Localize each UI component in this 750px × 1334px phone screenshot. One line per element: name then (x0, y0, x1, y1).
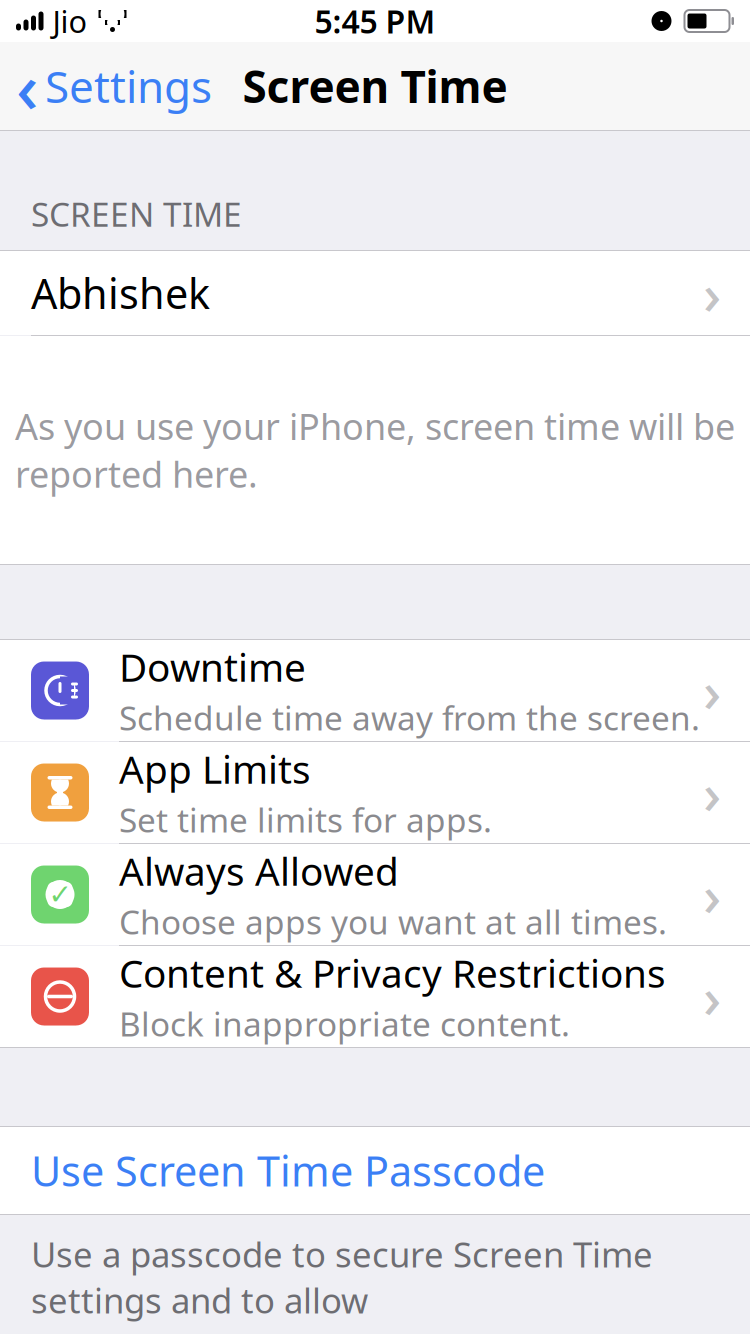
staticText: SCREEN TIME (31, 192, 242, 236)
staticText: As you use your iPhone, screen time will… (15, 402, 735, 498)
staticText: Screen Time (242, 57, 507, 115)
staticText: Use a passcode to secure Screen Time set… (31, 1231, 653, 1323)
button[interactable]: App Limits (0, 742, 750, 843)
staticText: Settings (45, 57, 212, 115)
button[interactable]: Downtime (0, 640, 750, 741)
staticText: Block inappropriate content. (119, 1001, 570, 1046)
staticText: Abhishek (31, 266, 210, 320)
staticText: Use Screen Time Passcode (31, 1143, 545, 1198)
staticText: › (703, 857, 721, 932)
button[interactable]: Abhishek (0, 251, 750, 335)
staticText: Schedule time away from the screen. (119, 695, 700, 740)
staticText: App Limits (119, 743, 311, 794)
button[interactable]: Content & Privacy Restrictions (0, 946, 750, 1047)
staticText: ✓ (48, 879, 71, 910)
button[interactable]: ✓ (0, 844, 750, 945)
staticText: › (703, 256, 721, 330)
button[interactable]: Use Screen Time Passcode (0, 1127, 750, 1214)
button[interactable]: ‹ (0, 34, 212, 138)
staticText: Content & Privacy Restrictions (119, 947, 666, 998)
staticText: › (703, 755, 721, 830)
staticText: 5:45 PM (314, 0, 435, 42)
staticText: Downtime (119, 641, 306, 692)
staticText: Set time limits for apps. (119, 797, 492, 842)
staticText: › (703, 959, 721, 1034)
staticText: Always Allowed (119, 845, 399, 896)
staticText: Jio (52, 1, 87, 41)
staticText: Choose apps you want at all times. (119, 899, 667, 944)
staticText: ‹ (16, 40, 39, 132)
staticText: › (703, 653, 721, 728)
